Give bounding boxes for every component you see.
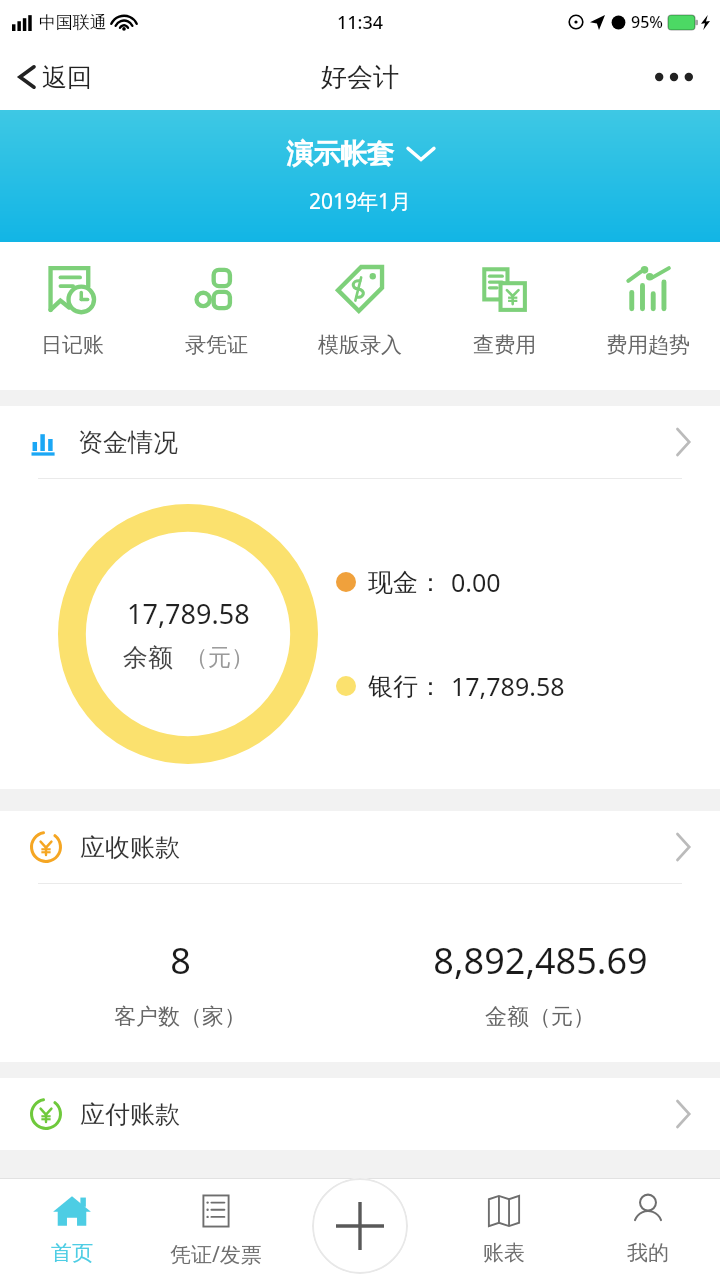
staticText: 现金： bbox=[368, 567, 443, 598]
button[interactable]: 查费用 bbox=[432, 242, 576, 390]
staticText: 金额（元） bbox=[485, 1003, 595, 1031]
staticText: 0.00 bbox=[451, 565, 501, 599]
button[interactable]: 演示帐套 bbox=[0, 110, 720, 242]
button[interactable]: More options bbox=[650, 53, 698, 101]
staticText: （元） bbox=[185, 643, 254, 672]
button[interactable]: 录凭证 bbox=[144, 242, 288, 390]
staticText: 银行： bbox=[368, 671, 443, 702]
button[interactable]: 我的 bbox=[576, 1178, 720, 1280]
button[interactable]: 费用趋势 bbox=[576, 242, 720, 390]
staticText: 费用趋势 bbox=[606, 332, 690, 358]
staticText: 演示帐套 bbox=[286, 137, 394, 171]
staticText: 好会计 bbox=[321, 61, 399, 94]
staticText: 首页 bbox=[51, 1240, 93, 1266]
button[interactable]: 首页 bbox=[0, 1178, 144, 1280]
staticText: 模版录入 bbox=[318, 332, 402, 358]
staticText: 我的 bbox=[627, 1240, 669, 1266]
button[interactable]: 资金情况 bbox=[0, 406, 720, 478]
staticText: 客户数（家） bbox=[114, 1003, 246, 1031]
staticText: 账表 bbox=[483, 1240, 525, 1266]
staticText: 余额 bbox=[123, 642, 173, 673]
button[interactable]: 凭证/发票 bbox=[144, 1178, 288, 1280]
staticText: 2019年1月 bbox=[309, 187, 412, 216]
button[interactable]: 日记账 bbox=[0, 242, 144, 390]
button[interactable]: 模版录入 bbox=[288, 242, 432, 390]
button[interactable]: 应付账款 bbox=[0, 1078, 720, 1150]
staticText: 应收账款 bbox=[80, 832, 180, 863]
staticText: 返回 bbox=[42, 62, 92, 93]
button[interactable]: 账表 bbox=[432, 1178, 576, 1280]
staticText: 8 bbox=[170, 936, 191, 985]
staticText: 8,892,485.69 bbox=[433, 936, 648, 985]
staticText: 17,789.58 bbox=[127, 595, 250, 632]
button[interactable]: 返回 bbox=[10, 54, 98, 100]
staticText: 查费用 bbox=[473, 332, 536, 358]
button[interactable]: 应收账款 bbox=[0, 811, 720, 883]
staticText: 资金情况 bbox=[78, 427, 178, 458]
button[interactable]: Add bbox=[312, 1178, 408, 1274]
staticText: 日记账 bbox=[41, 332, 104, 358]
staticText: 录凭证 bbox=[185, 332, 248, 358]
staticText: 11:34 bbox=[337, 10, 384, 35]
staticText: 应付账款 bbox=[80, 1099, 180, 1130]
staticText: 中国联通 bbox=[39, 12, 107, 33]
staticText: 17,789.58 bbox=[451, 669, 565, 703]
staticText: 凭证/发票 bbox=[170, 1240, 262, 1269]
staticText: 95% bbox=[631, 11, 663, 33]
